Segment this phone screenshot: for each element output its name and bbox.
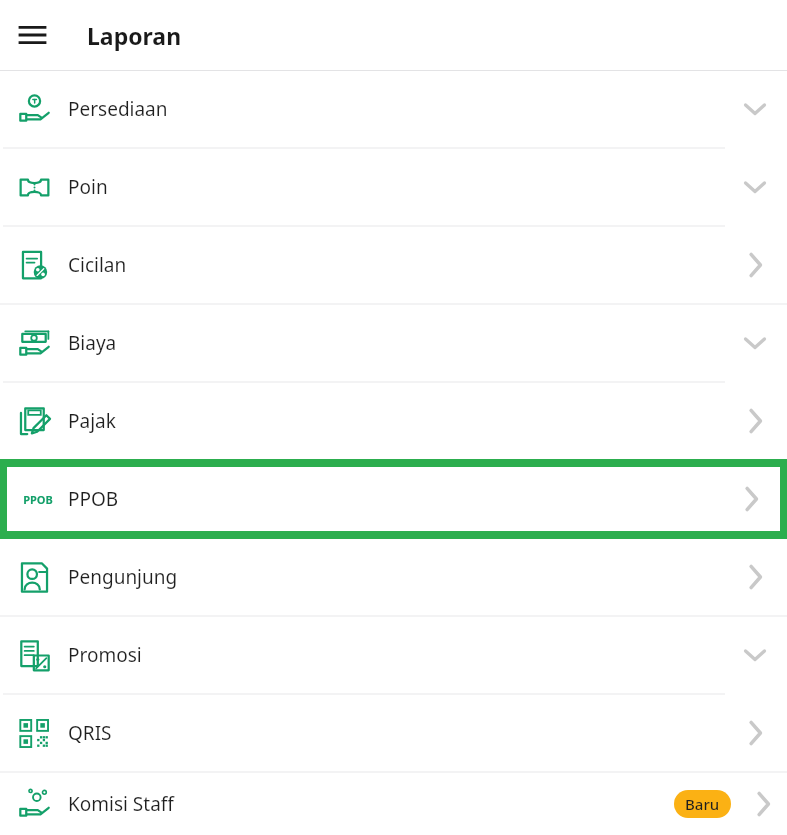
staticText: Pajak (68, 408, 723, 434)
button[interactable]: Promosi (0, 617, 787, 693)
staticText: PPOB (23, 492, 53, 507)
button[interactable]: Menu (8, 11, 56, 59)
button[interactable]: Persediaan (0, 71, 787, 147)
staticText: Promosi (68, 642, 723, 668)
button[interactable]: PPOB (7, 467, 780, 531)
button[interactable]: QRIS (0, 695, 787, 771)
staticText: Baru (685, 794, 720, 814)
staticText: Biaya (68, 330, 723, 356)
staticText: Persediaan (68, 96, 723, 122)
button[interactable]: Pengunjung (0, 539, 787, 615)
button[interactable]: Poin (0, 149, 787, 225)
button[interactable]: Biaya (0, 305, 787, 381)
staticText: Komisi Staff (68, 791, 674, 817)
button[interactable]: Pajak (0, 383, 787, 459)
staticText: QRIS (68, 720, 723, 746)
staticText: Poin (68, 174, 723, 200)
staticText: Laporan (87, 20, 182, 51)
staticText: Pengunjung (68, 564, 723, 590)
staticText: Cicilan (68, 252, 723, 278)
button[interactable]: Cicilan (0, 227, 787, 303)
staticText: PPOB (68, 486, 723, 512)
button[interactable]: Komisi Staff (0, 773, 787, 835)
